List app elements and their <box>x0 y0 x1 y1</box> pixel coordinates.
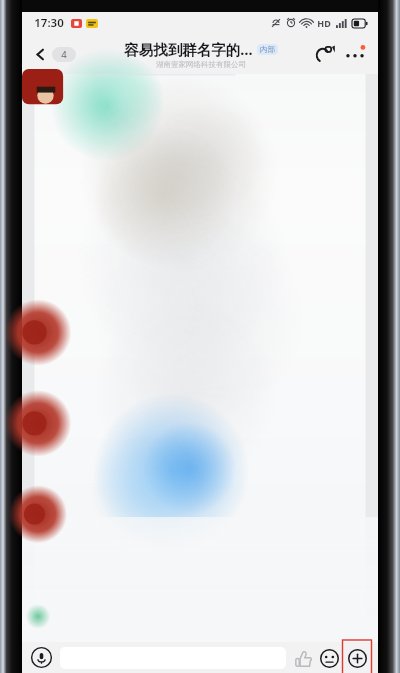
staticText: 4 <box>61 48 67 61</box>
button[interactable]: Emoji <box>316 645 342 671</box>
button[interactable]: Thumbs up <box>290 645 316 671</box>
button[interactable]: Back <box>29 44 80 65</box>
staticText: HD <box>317 17 331 29</box>
staticText: 内部 <box>260 45 275 54</box>
button[interactable]: More functions <box>342 643 372 673</box>
staticText: 17:30 <box>34 15 64 31</box>
staticText: 湖南壹家网络科技有限公司 <box>156 60 246 69</box>
staticText: 容易找到群名字的… <box>124 39 253 59</box>
button[interactable]: More options <box>340 39 370 69</box>
button[interactable]: Voice message <box>28 644 55 671</box>
button[interactable]: Video call <box>310 39 340 69</box>
